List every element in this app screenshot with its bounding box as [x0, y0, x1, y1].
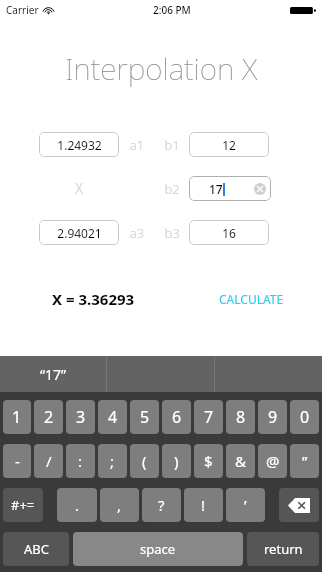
staticText: & — [235, 451, 246, 471]
button[interactable]: 4 — [98, 400, 127, 434]
button[interactable]: CALCULATE — [217, 289, 286, 309]
staticText: ’ — [244, 495, 247, 515]
button[interactable]: $ — [194, 444, 223, 478]
button[interactable]: 17 — [189, 176, 271, 201]
staticText: 2:06 PM — [153, 3, 191, 17]
staticText: 0 — [300, 406, 310, 428]
button[interactable]: “17” — [0, 356, 106, 392]
staticText: 16 — [222, 225, 236, 241]
staticText: b3 — [155, 224, 189, 242]
button[interactable]: ; — [98, 444, 127, 478]
staticText: 8 — [236, 406, 246, 428]
button[interactable]: ’ — [226, 488, 265, 522]
staticText: ! — [201, 495, 206, 515]
staticText: / — [46, 451, 52, 471]
staticText: 5 — [140, 406, 150, 428]
button[interactable]: 7 — [194, 400, 223, 434]
staticText: a1 — [119, 136, 155, 154]
button[interactable]: : — [66, 444, 95, 478]
button[interactable]: ” — [290, 444, 319, 478]
button[interactable]: 8 — [226, 400, 255, 434]
button[interactable]: space — [73, 532, 243, 566]
staticText: Interpolation X — [65, 48, 258, 89]
staticText: ABC — [24, 540, 49, 558]
button[interactable]: 16 — [189, 220, 269, 245]
staticText: space — [140, 540, 176, 558]
button[interactable]: return — [247, 532, 319, 566]
button[interactable]: Backspace — [279, 488, 319, 522]
button[interactable]: ( — [130, 444, 159, 478]
staticText: , — [117, 495, 122, 515]
button[interactable]: ABC — [3, 532, 69, 566]
button[interactable]: 3 — [66, 400, 95, 434]
button[interactable]: - — [3, 444, 31, 478]
button[interactable]: / — [34, 444, 63, 478]
staticText: 7 — [204, 406, 214, 428]
button[interactable]: 12 — [189, 132, 269, 157]
staticText: 3 — [76, 406, 86, 428]
button[interactable]: 6 — [162, 400, 191, 434]
button[interactable]: , — [100, 488, 139, 522]
button[interactable]: 1 — [3, 400, 31, 434]
button[interactable]: ! — [184, 488, 223, 522]
staticText: X = 3.36293 — [52, 289, 135, 309]
staticText: #+= — [11, 496, 35, 514]
button[interactable]: Clear text — [254, 183, 266, 195]
staticText: CALCULATE — [219, 291, 284, 307]
button[interactable]: ) — [162, 444, 191, 478]
staticText: $ — [204, 451, 213, 471]
staticText: 4 — [108, 406, 118, 428]
button[interactable]: 1.24932 — [39, 132, 119, 157]
staticText: a3 — [119, 224, 155, 242]
button[interactable]: 2.94021 — [39, 220, 119, 245]
staticText: ( — [142, 451, 147, 471]
staticText: 2.94021 — [57, 225, 102, 241]
staticText: - — [15, 451, 20, 471]
staticText: 1.24932 — [57, 137, 102, 153]
staticText: ) — [174, 451, 179, 471]
staticText: . — [75, 495, 80, 515]
staticText: 1 — [12, 406, 22, 428]
staticText: b2 — [155, 180, 189, 198]
button[interactable]: 0 — [290, 400, 319, 434]
button[interactable]: @ — [258, 444, 287, 478]
staticText: : — [78, 451, 83, 471]
staticText: X — [75, 179, 83, 198]
staticText: return — [264, 540, 303, 558]
button[interactable]: #+= — [3, 488, 43, 522]
button[interactable]: ? — [142, 488, 181, 522]
button[interactable]: 9 — [258, 400, 287, 434]
staticText: Carrier — [6, 3, 39, 17]
button[interactable]: 5 — [130, 400, 159, 434]
staticText: 9 — [268, 406, 278, 428]
staticText: 17 — [209, 181, 223, 197]
staticText: 2 — [44, 406, 54, 428]
button[interactable]: . — [57, 488, 97, 522]
staticText: ” — [302, 451, 308, 471]
staticText: ? — [158, 495, 165, 515]
staticText: b1 — [155, 136, 189, 154]
staticText: 6 — [172, 406, 182, 428]
staticText: 12 — [222, 137, 236, 153]
staticText: ; — [110, 451, 115, 471]
staticText: @ — [266, 451, 280, 471]
staticText: “17” — [40, 365, 67, 384]
button[interactable]: & — [226, 444, 255, 478]
button[interactable]: 2 — [34, 400, 63, 434]
